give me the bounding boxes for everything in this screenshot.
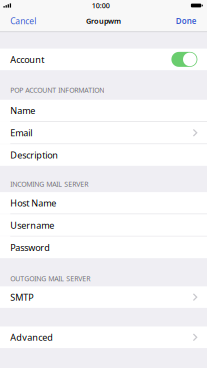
staticText: Description (10, 149, 58, 161)
staticText: Cancel (10, 15, 36, 27)
staticText: Done (176, 16, 197, 26)
staticText: Email (10, 127, 32, 139)
button[interactable]: Advanced (0, 326, 207, 348)
staticText: Advanced (10, 331, 53, 343)
staticText: 10:00 (92, 1, 110, 10)
button[interactable]: Email (0, 122, 207, 144)
button[interactable]: Account (0, 49, 207, 70)
staticText: SMTP (10, 291, 33, 303)
staticText: POP ACCOUNT INFORMATION (10, 85, 104, 95)
button[interactable]: SMTP (0, 286, 207, 308)
staticText: Account (10, 53, 44, 65)
staticText: Name (10, 104, 35, 117)
staticText: Username (10, 219, 54, 231)
staticText: Password (10, 241, 50, 253)
staticText: OUTGOING MAIL SERVER (10, 274, 90, 283)
button[interactable]: Cancel (0, 12, 42, 30)
staticText: Host Name (10, 197, 56, 209)
staticText: INCOMING MAIL SERVER (10, 179, 88, 189)
staticText: Groupwm (86, 16, 121, 26)
button[interactable]: Done (170, 12, 207, 30)
